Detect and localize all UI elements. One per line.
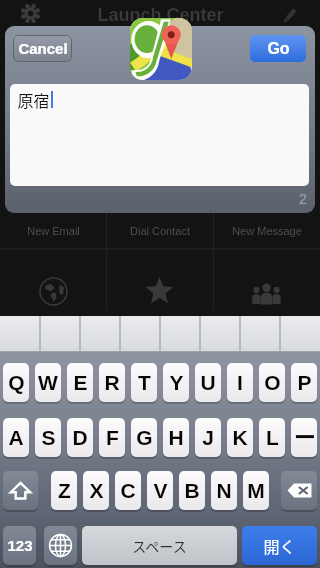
button[interactable]: スペース [82, 526, 237, 565]
staticText: Cancel [18, 40, 68, 57]
button[interactable]: A [3, 418, 29, 457]
staticText: P [297, 371, 312, 394]
staticText: A [8, 426, 24, 449]
staticText: D [72, 426, 88, 449]
staticText: U [200, 371, 216, 394]
staticText: 開く [263, 534, 296, 557]
button[interactable]: Settings [21, 4, 40, 23]
staticText: Go [267, 40, 290, 58]
staticText: ー [294, 425, 315, 451]
button[interactable]: Dial Contact [106, 213, 213, 249]
button[interactable]: ー [291, 418, 317, 457]
button[interactable]: B [179, 471, 205, 510]
button[interactable] [40, 316, 80, 352]
button[interactable]: T [131, 363, 157, 402]
staticText: New Message [232, 225, 302, 237]
button[interactable]: F [99, 418, 125, 457]
button[interactable]: E [67, 363, 93, 402]
button[interactable] [160, 316, 200, 352]
button[interactable]: G [131, 418, 157, 457]
staticText: V [153, 479, 168, 502]
staticText: N [216, 479, 232, 502]
staticText: 2 [299, 191, 307, 207]
staticText: Launch Center [97, 5, 224, 25]
button[interactable]: Shift [3, 471, 38, 510]
staticText: F [106, 426, 119, 449]
button[interactable]: S [35, 418, 61, 457]
button[interactable]: Web [0, 249, 106, 311]
staticText: R [104, 371, 120, 394]
button[interactable]: Backspace [281, 471, 317, 510]
staticText: C [120, 479, 136, 502]
button[interactable]: I [227, 363, 253, 402]
button[interactable]: New Message [213, 213, 320, 249]
button[interactable]: D [67, 418, 93, 457]
staticText: J [202, 426, 214, 449]
staticText: K [232, 426, 248, 449]
button[interactable] [200, 316, 240, 352]
button[interactable]: K [227, 418, 253, 457]
button[interactable]: W [35, 363, 61, 402]
staticText: M [247, 479, 265, 502]
staticText: S [41, 426, 56, 449]
button[interactable]: Numbers [3, 526, 36, 565]
staticText: W [38, 371, 58, 394]
staticText: Y [169, 371, 184, 394]
button[interactable]: U [195, 363, 221, 402]
staticText: H [168, 426, 184, 449]
button[interactable] [120, 316, 160, 352]
button[interactable]: P [291, 363, 317, 402]
staticText: 123 [7, 537, 33, 554]
button[interactable]: C [115, 471, 141, 510]
button[interactable] [0, 316, 40, 352]
button[interactable]: R [99, 363, 125, 402]
button[interactable]: O [259, 363, 285, 402]
staticText: L [266, 426, 279, 449]
button[interactable]: V [147, 471, 173, 510]
button[interactable]: N [211, 471, 237, 510]
button[interactable]: H [163, 418, 189, 457]
button[interactable]: M [243, 471, 269, 510]
staticText: Dial Contact [130, 225, 190, 237]
staticText: I [237, 371, 243, 394]
button[interactable]: Contacts [213, 249, 320, 311]
button[interactable]: Q [3, 363, 29, 402]
staticText: T [138, 371, 151, 394]
staticText: 原宿 [17, 88, 50, 111]
staticText: G [136, 426, 153, 449]
staticText: スペース [132, 536, 187, 556]
staticText: O [264, 371, 281, 394]
button[interactable]: Y [163, 363, 189, 402]
button[interactable]: Go [250, 35, 306, 62]
button[interactable]: Z [51, 471, 77, 510]
button[interactable]: Google Maps [130, 18, 192, 80]
button[interactable]: New Email [0, 213, 106, 249]
button[interactable]: Language [44, 526, 77, 565]
staticText: B [184, 479, 200, 502]
button[interactable]: Favorites [106, 249, 213, 311]
button[interactable]: X [83, 471, 109, 510]
button[interactable]: Cancel [13, 35, 72, 62]
button[interactable] [80, 316, 120, 352]
staticText: X [89, 479, 104, 502]
button[interactable]: Edit [280, 4, 299, 23]
button[interactable]: 開く [242, 526, 317, 565]
button[interactable] [240, 316, 280, 352]
staticText: Z [58, 479, 71, 502]
button[interactable]: J [195, 418, 221, 457]
button[interactable] [280, 316, 320, 352]
button[interactable]: 原宿 [10, 84, 309, 186]
staticText: E [73, 371, 88, 394]
button[interactable]: L [259, 418, 285, 457]
staticText: New Email [27, 225, 80, 237]
staticText: Q [8, 371, 25, 394]
